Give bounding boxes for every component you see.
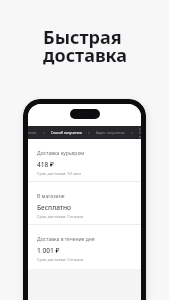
staticText: >	[131, 130, 133, 135]
staticText: ьные	[28, 130, 37, 135]
staticText: Срок доставки: Сегодня	[37, 214, 84, 219]
staticText: Срок доставки: 92 мин	[37, 171, 81, 176]
staticText: >	[88, 130, 90, 135]
staticText: 418 ₽	[37, 160, 54, 169]
staticText: Бесплатно	[37, 203, 72, 212]
staticText: Доставка в течение дня	[37, 236, 95, 243]
staticText: Опл	[139, 127, 141, 139]
staticText: В магазине	[37, 193, 65, 200]
button[interactable]: В магазине	[28, 182, 141, 225]
staticText: 1 001 ₽	[37, 246, 60, 255]
staticText: Доставка курьером	[37, 150, 85, 157]
staticText: Адрес получения	[96, 130, 125, 135]
staticText: >	[43, 130, 45, 135]
staticText: Срок доставки: Сегодня	[37, 257, 84, 262]
staticText: Быстрая доставка	[43, 25, 128, 67]
button[interactable]: Доставка в течение дня	[28, 225, 141, 268]
button[interactable]: Доставка курьером	[28, 139, 141, 182]
staticText: Способ получения	[51, 130, 82, 135]
